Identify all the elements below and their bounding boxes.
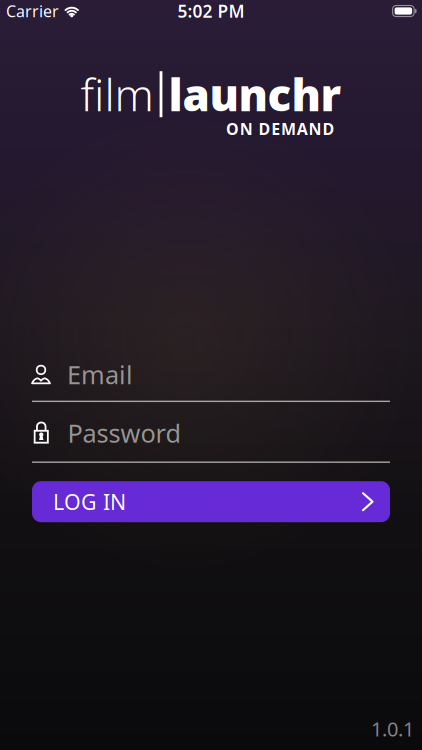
button[interactable]: Password	[0, 416, 422, 450]
staticText: 1.0.1	[371, 715, 414, 742]
staticText: 5:02 PM	[177, 0, 244, 22]
staticText: M	[281, 118, 296, 139]
staticText: N	[309, 118, 322, 139]
staticText: A	[297, 118, 308, 139]
staticText: Carrier	[6, 0, 59, 22]
staticText: N	[240, 118, 253, 139]
staticText: Password	[67, 416, 181, 450]
staticText: E	[271, 118, 280, 139]
staticText: LOG IN	[53, 487, 126, 516]
staticText: film	[81, 65, 154, 123]
button[interactable]: LOG IN	[32, 481, 390, 522]
staticText: D	[322, 118, 334, 139]
staticText: Email	[67, 357, 133, 391]
staticText: O	[226, 118, 239, 139]
staticText: D	[258, 118, 270, 139]
button[interactable]: Email	[0, 357, 422, 391]
staticText: launchr	[168, 65, 341, 123]
